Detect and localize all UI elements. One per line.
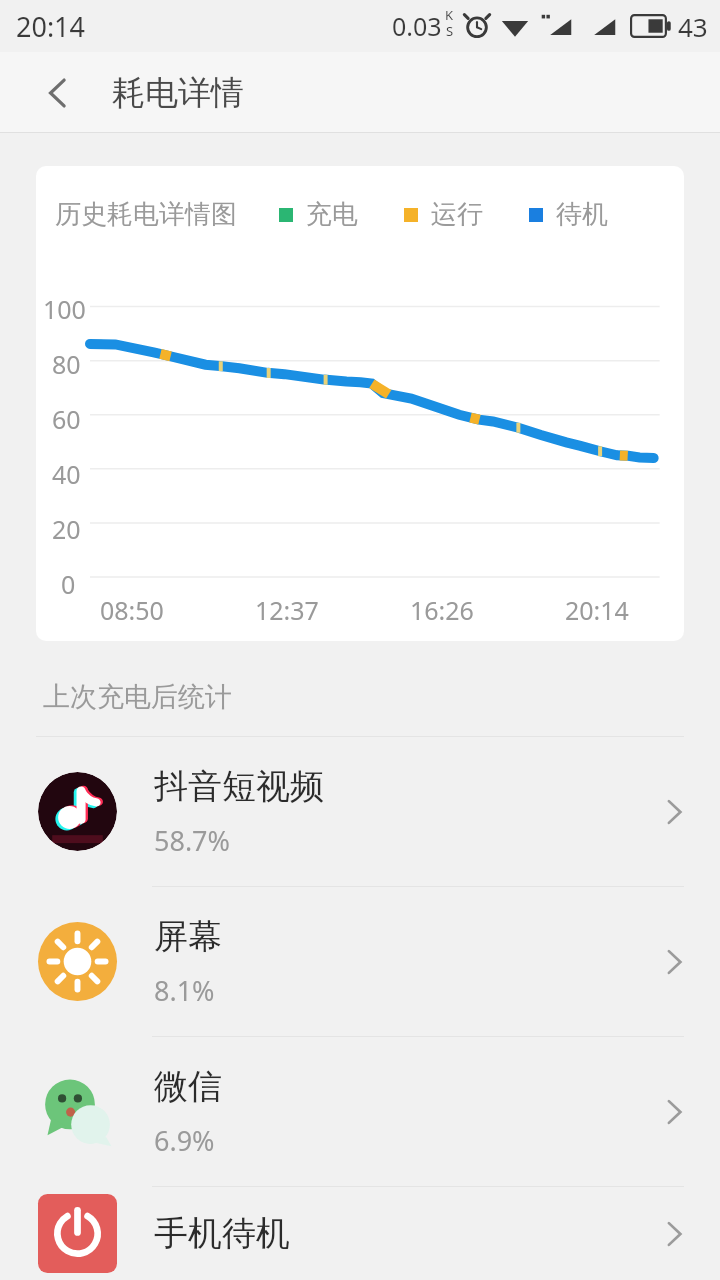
staticText: 20:14 xyxy=(16,8,86,45)
staticText: 微信 xyxy=(154,1065,222,1108)
staticText: 12:37 xyxy=(255,593,319,627)
staticText: 运行 xyxy=(431,198,483,231)
staticText: 6.9% xyxy=(154,1122,215,1159)
staticText: K xyxy=(445,6,454,24)
staticText: 80 xyxy=(52,347,81,381)
button[interactable]: Back xyxy=(26,61,90,125)
button[interactable]: 屏幕 xyxy=(0,887,720,1036)
staticText: S xyxy=(446,22,454,40)
button[interactable]: 手机待机 xyxy=(0,1187,720,1280)
button[interactable]: 微信 xyxy=(0,1037,720,1186)
staticText: 0.03 xyxy=(392,9,442,43)
staticText: 手机待机 xyxy=(154,1212,290,1255)
staticText: 充电 xyxy=(306,198,358,231)
staticText: 43 xyxy=(678,9,708,44)
staticText: 0 xyxy=(61,567,76,601)
staticText: 20:14 xyxy=(565,593,629,627)
staticText: 耗电详情 xyxy=(112,72,244,114)
staticText: 历史耗电详情图 xyxy=(55,198,237,231)
staticText: 抖音短视频 xyxy=(154,765,324,808)
staticText: 20 xyxy=(52,512,81,546)
staticText: 16:26 xyxy=(410,593,474,627)
staticText: 上次充电后统计 xyxy=(43,680,232,714)
staticText: 100 xyxy=(43,292,86,326)
staticText: 40 xyxy=(52,457,81,491)
staticText: 屏幕 xyxy=(154,915,222,958)
staticText: 60 xyxy=(52,402,81,436)
staticText: 8.1% xyxy=(154,972,215,1009)
staticText: 58.7% xyxy=(154,822,231,859)
button[interactable]: 抖音短视频 xyxy=(0,737,720,886)
staticText: 待机 xyxy=(556,198,608,231)
staticText: 08:50 xyxy=(100,593,164,627)
